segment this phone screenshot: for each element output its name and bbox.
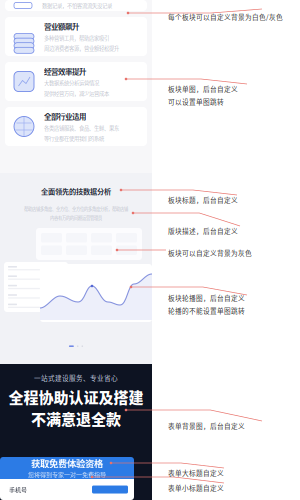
- staticText: 一站式建设服务、专业省心: [34, 373, 118, 383]
- staticText: 内容有万的的问题运营管理员: [50, 215, 102, 221]
- staticText: 全部行业适用: [44, 111, 86, 122]
- staticText: 轮播的不能设置单图跳转: [168, 306, 245, 315]
- staticText: 各类店铺服装、食品、生鲜、果东: [44, 124, 119, 132]
- button[interactable]: 获取免费体验资格: [0, 457, 134, 479]
- staticText: 全面领先的技数据分析: [41, 186, 111, 196]
- staticText: 表单背景图，后台自定义: [168, 421, 245, 431]
- staticText: 多种营销工具，帮助店家吸引: [44, 34, 109, 42]
- staticText: 可以设置单图跳转: [168, 97, 224, 106]
- staticText: 获取免费体验资格: [31, 456, 103, 470]
- staticText: 周边消费者客源，营业额轻松提升: [44, 44, 119, 52]
- staticText: 大数据系统分析运营情况: [44, 79, 99, 87]
- staticText: 提供经营方向，减少运营成本: [44, 89, 109, 97]
- staticText: 板块单图，后台自定义: [168, 84, 238, 94]
- staticText: 每个板块可以自定义背景为白色/灰色: [168, 12, 283, 22]
- button[interactable]: 经营效率提升: [5, 62, 147, 101]
- staticText: 板块标题，后台自定义: [168, 195, 238, 205]
- staticText: 版块描述，后台自定义: [168, 226, 238, 236]
- staticText: 等行业都在使用我们的系统: [44, 134, 104, 142]
- staticText: 板块可以自定义背景为灰色: [168, 248, 252, 258]
- staticText: 手机号: [9, 485, 27, 494]
- staticText: 板块轮播图，后台自定义: [168, 293, 245, 303]
- staticText: 表单大标题自定义: [168, 468, 224, 478]
- staticText: 经营效率提升: [44, 66, 86, 77]
- staticText: 帮助店铺多角度、全方位、全方位的多角度分析，帮助店铺: [24, 205, 128, 212]
- button[interactable]: 全部行业适用: [5, 107, 147, 146]
- staticText: 数据记录，不怕客流流失没记录: [42, 2, 112, 9]
- staticText: 不满意退全款: [31, 407, 121, 429]
- staticText: 您将得到专家一对一免费指导: [28, 470, 106, 479]
- button[interactable]: 营业额飙升: [5, 17, 147, 56]
- staticText: 营业额飙升: [44, 21, 79, 32]
- staticText: 表单小标题自定义: [168, 483, 224, 493]
- staticText: 全程协助认证及搭建: [8, 386, 143, 407]
